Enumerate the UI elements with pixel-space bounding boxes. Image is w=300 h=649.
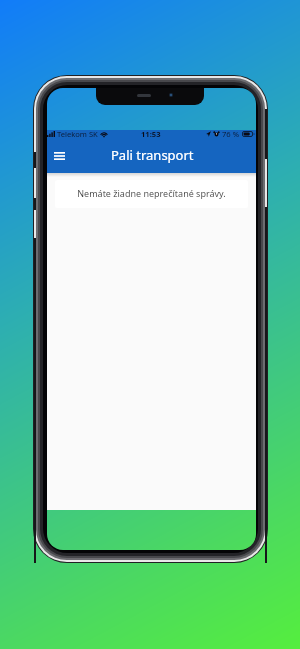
staticText: 76 % (222, 129, 239, 139)
staticText: 11:53 (141, 129, 161, 139)
button[interactable]: Open navigation menu (47, 143, 72, 168)
button[interactable]: Nemáte žiadne neprečítané správy. (55, 180, 248, 208)
staticText: Telekom SK (57, 129, 98, 139)
staticText: Nemáte žiadne neprečítané správy. (77, 187, 226, 199)
staticText: Pali transport (111, 146, 194, 164)
